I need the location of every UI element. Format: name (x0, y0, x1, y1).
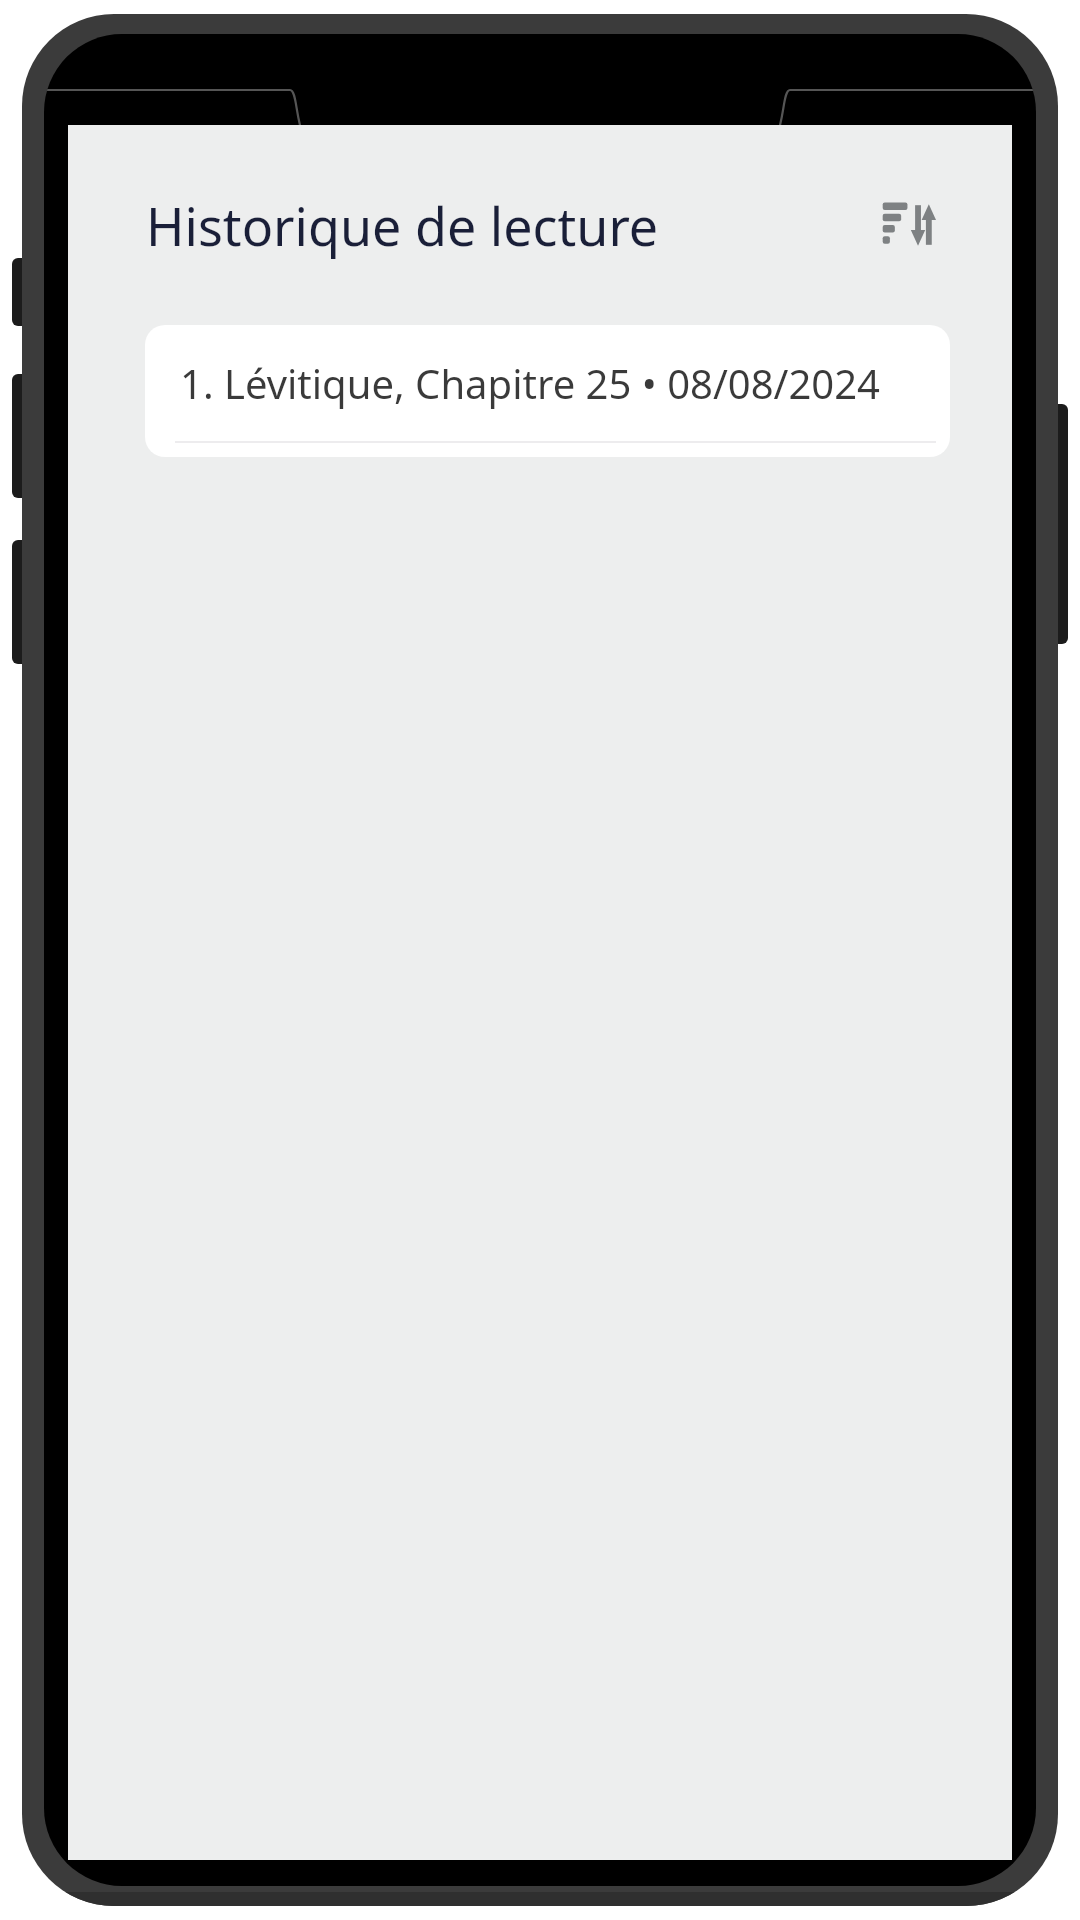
staticText: Historique de lecture (146, 190, 868, 261)
button[interactable]: 1. Lévitique, Chapitre 25 • 08/08/2024 (145, 325, 950, 457)
button[interactable]: Trier (868, 186, 946, 264)
staticText: 1. Lévitique, Chapitre 25 • 08/08/2024 (180, 356, 880, 410)
